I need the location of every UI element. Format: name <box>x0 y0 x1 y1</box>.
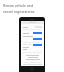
button[interactable]: Home <box>30 67 34 71</box>
staticText: Renew vehicle and <box>3 3 34 8</box>
staticText: vessel registrations <box>3 9 35 14</box>
button[interactable] <box>23 38 42 40</box>
button[interactable]: Home <box>19 17 45 72</box>
button[interactable] <box>23 32 42 34</box>
